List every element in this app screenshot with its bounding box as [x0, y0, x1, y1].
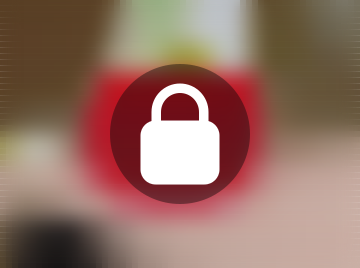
button[interactable]: Content hidden, tap to unlock: [110, 64, 250, 204]
